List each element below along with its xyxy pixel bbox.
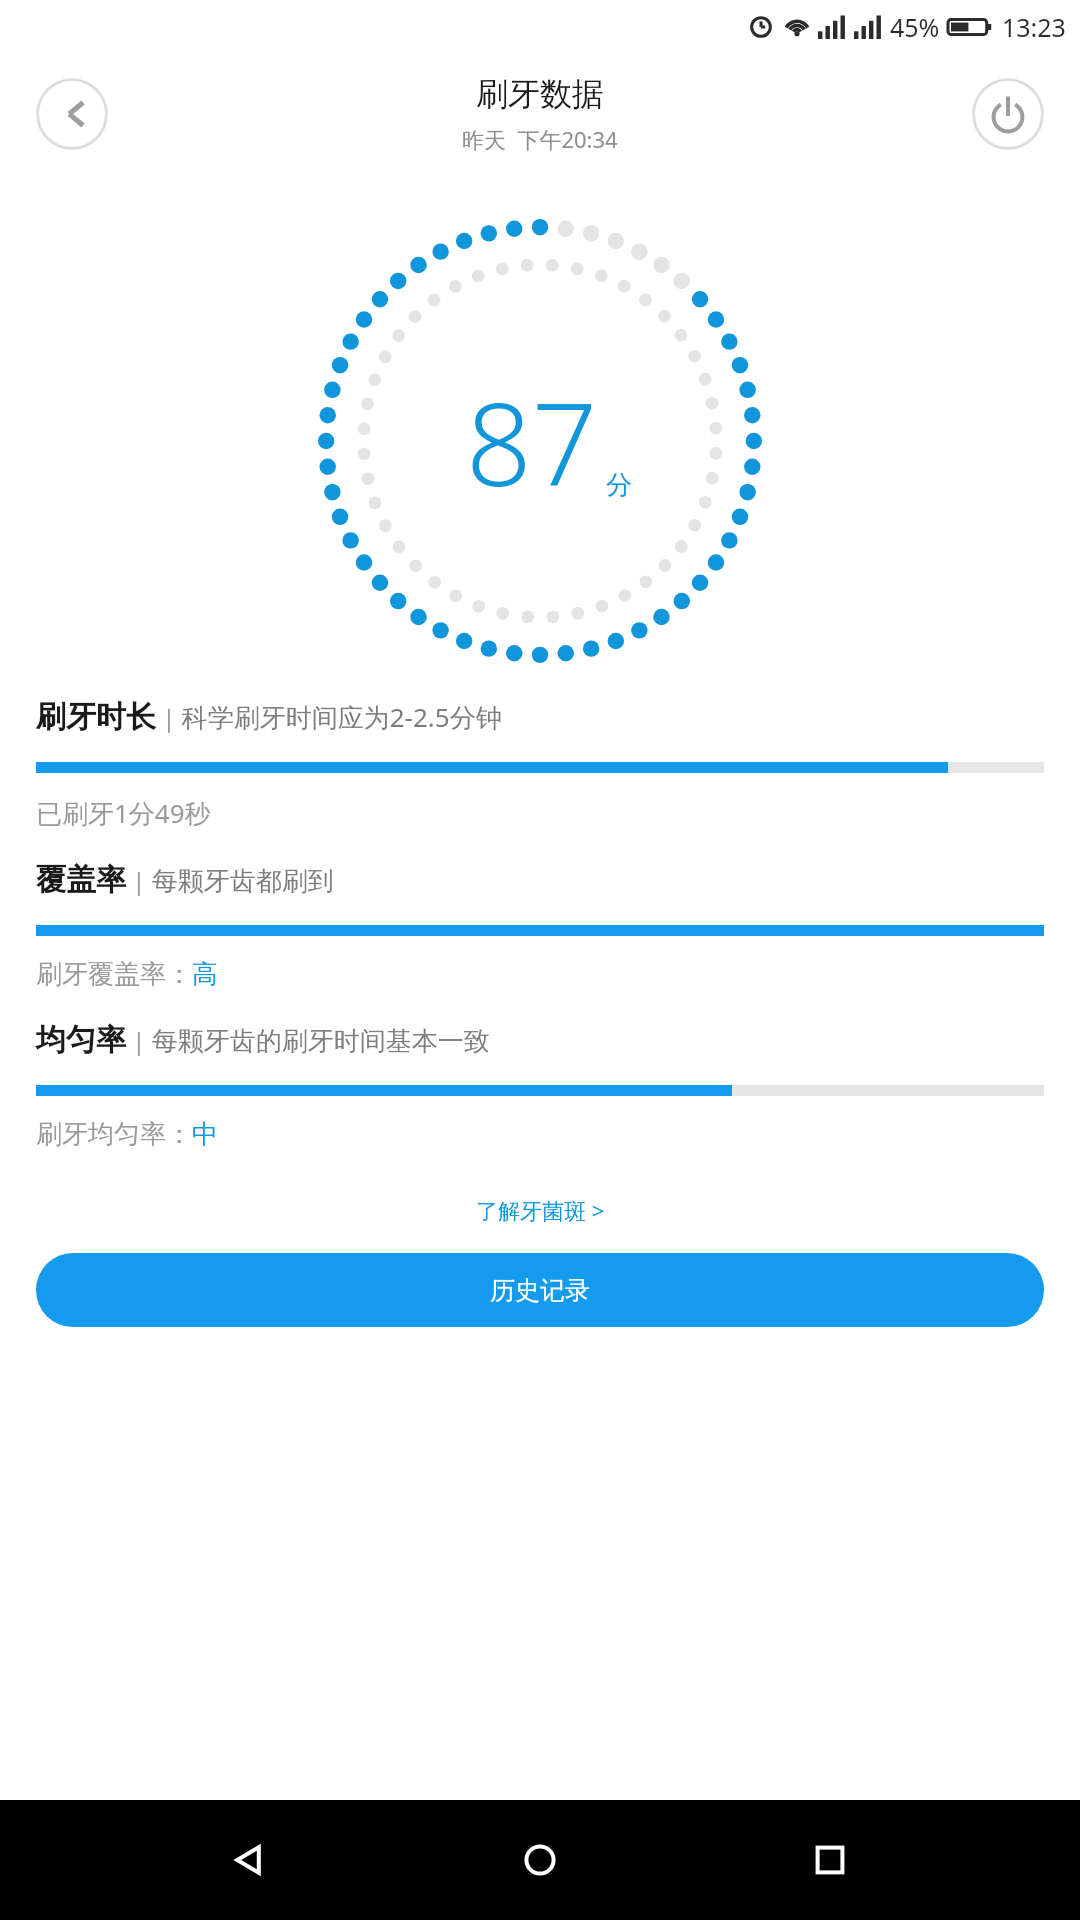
staticText: 已刷牙1分49秒: [36, 795, 211, 831]
staticText: 87: [466, 363, 598, 520]
staticText: 45%: [890, 10, 940, 44]
staticText: 刷牙覆盖率：高: [36, 958, 218, 991]
button[interactable]: Share: [972, 78, 1044, 150]
staticText: 均匀率 | 每颗牙齿的刷牙时间基本一致: [36, 1021, 490, 1059]
staticText: 历史记录: [490, 1275, 590, 1306]
staticText: 分: [606, 469, 632, 502]
staticText: 覆盖率 | 每颗牙齿都刷到: [36, 861, 334, 899]
button[interactable]: Back: [36, 78, 108, 150]
button[interactable]: Home: [500, 1820, 580, 1900]
staticText: 刷牙时长 | 科学刷牙时间应为2-2.5分钟: [36, 698, 502, 736]
button[interactable]: 历史记录: [36, 1253, 1044, 1327]
staticText: 了解牙菌斑 >: [476, 1195, 605, 1225]
staticText: 刷牙均匀率：中: [36, 1118, 218, 1151]
staticText: 刷牙数据: [476, 74, 604, 114]
button[interactable]: Recents: [790, 1820, 870, 1900]
button[interactable]: 了解牙菌斑 >: [464, 1189, 617, 1231]
button[interactable]: Back: [210, 1820, 290, 1900]
staticText: 13:23: [1002, 10, 1066, 44]
staticText: 昨天 下午20:34: [462, 124, 618, 154]
